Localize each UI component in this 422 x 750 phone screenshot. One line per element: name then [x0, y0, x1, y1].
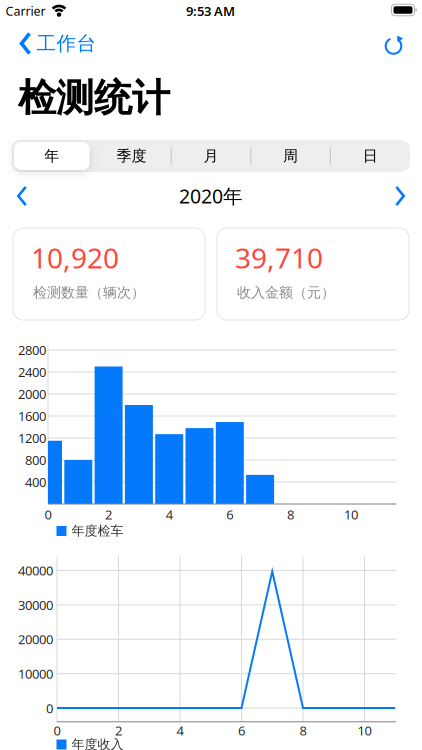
staticText: 日 [363, 147, 378, 165]
staticText: 工作台 [36, 31, 96, 56]
staticText: 0 [53, 722, 60, 739]
staticText: 周 [283, 147, 298, 165]
staticText: 季度 [116, 147, 146, 165]
staticText: 月 [203, 147, 218, 165]
staticText: 2400 [18, 363, 46, 381]
staticText: 1600 [18, 407, 46, 425]
staticText: 10,920 [31, 239, 119, 277]
staticText: 2020年 [179, 183, 243, 209]
staticText: 8 [287, 506, 294, 523]
staticText: 2000 [18, 385, 46, 403]
staticText: 年度收入 [71, 736, 123, 750]
staticText: 8 [299, 722, 306, 739]
staticText: 检测统计 [18, 74, 170, 122]
staticText: 年度检车 [71, 523, 123, 539]
staticText: 0 [44, 506, 51, 523]
staticText: 2800 [18, 341, 46, 359]
staticText: 30000 [18, 596, 53, 614]
staticText: 39,710 [235, 239, 323, 277]
staticText: Carrier [5, 2, 45, 19]
staticText: 10000 [18, 665, 53, 682]
button[interactable]: 日 [330, 140, 410, 172]
staticText: 400 [25, 473, 46, 491]
button[interactable]: 年 [12, 140, 92, 172]
staticText: 10 [344, 506, 358, 523]
button[interactable]: 季度 [92, 140, 171, 172]
button[interactable]: 刷新 [381, 33, 405, 57]
staticText: 4 [166, 506, 173, 523]
staticText: 2 [115, 722, 122, 739]
button[interactable]: 上一年 [16, 185, 27, 206]
staticText: 20000 [18, 630, 53, 648]
staticText: 收入金额（元） [237, 284, 335, 301]
staticText: 1200 [18, 429, 46, 447]
staticText: 4 [176, 722, 183, 739]
staticText: 9:53 AM [186, 2, 235, 20]
staticText: 40000 [18, 562, 53, 579]
staticText: 6 [238, 722, 245, 739]
button[interactable]: 周 [251, 140, 330, 172]
button[interactable]: 工作台 [19, 31, 96, 56]
button[interactable]: 下一年 [394, 185, 405, 206]
button[interactable]: 月 [171, 140, 251, 172]
staticText: 年 [44, 147, 59, 165]
staticText: 10 [357, 722, 371, 739]
staticText: 0 [46, 699, 53, 717]
staticText: 800 [25, 451, 46, 469]
staticText: 2 [105, 506, 112, 523]
staticText: 检测数量（辆次） [33, 284, 145, 301]
staticText: 6 [226, 506, 233, 523]
